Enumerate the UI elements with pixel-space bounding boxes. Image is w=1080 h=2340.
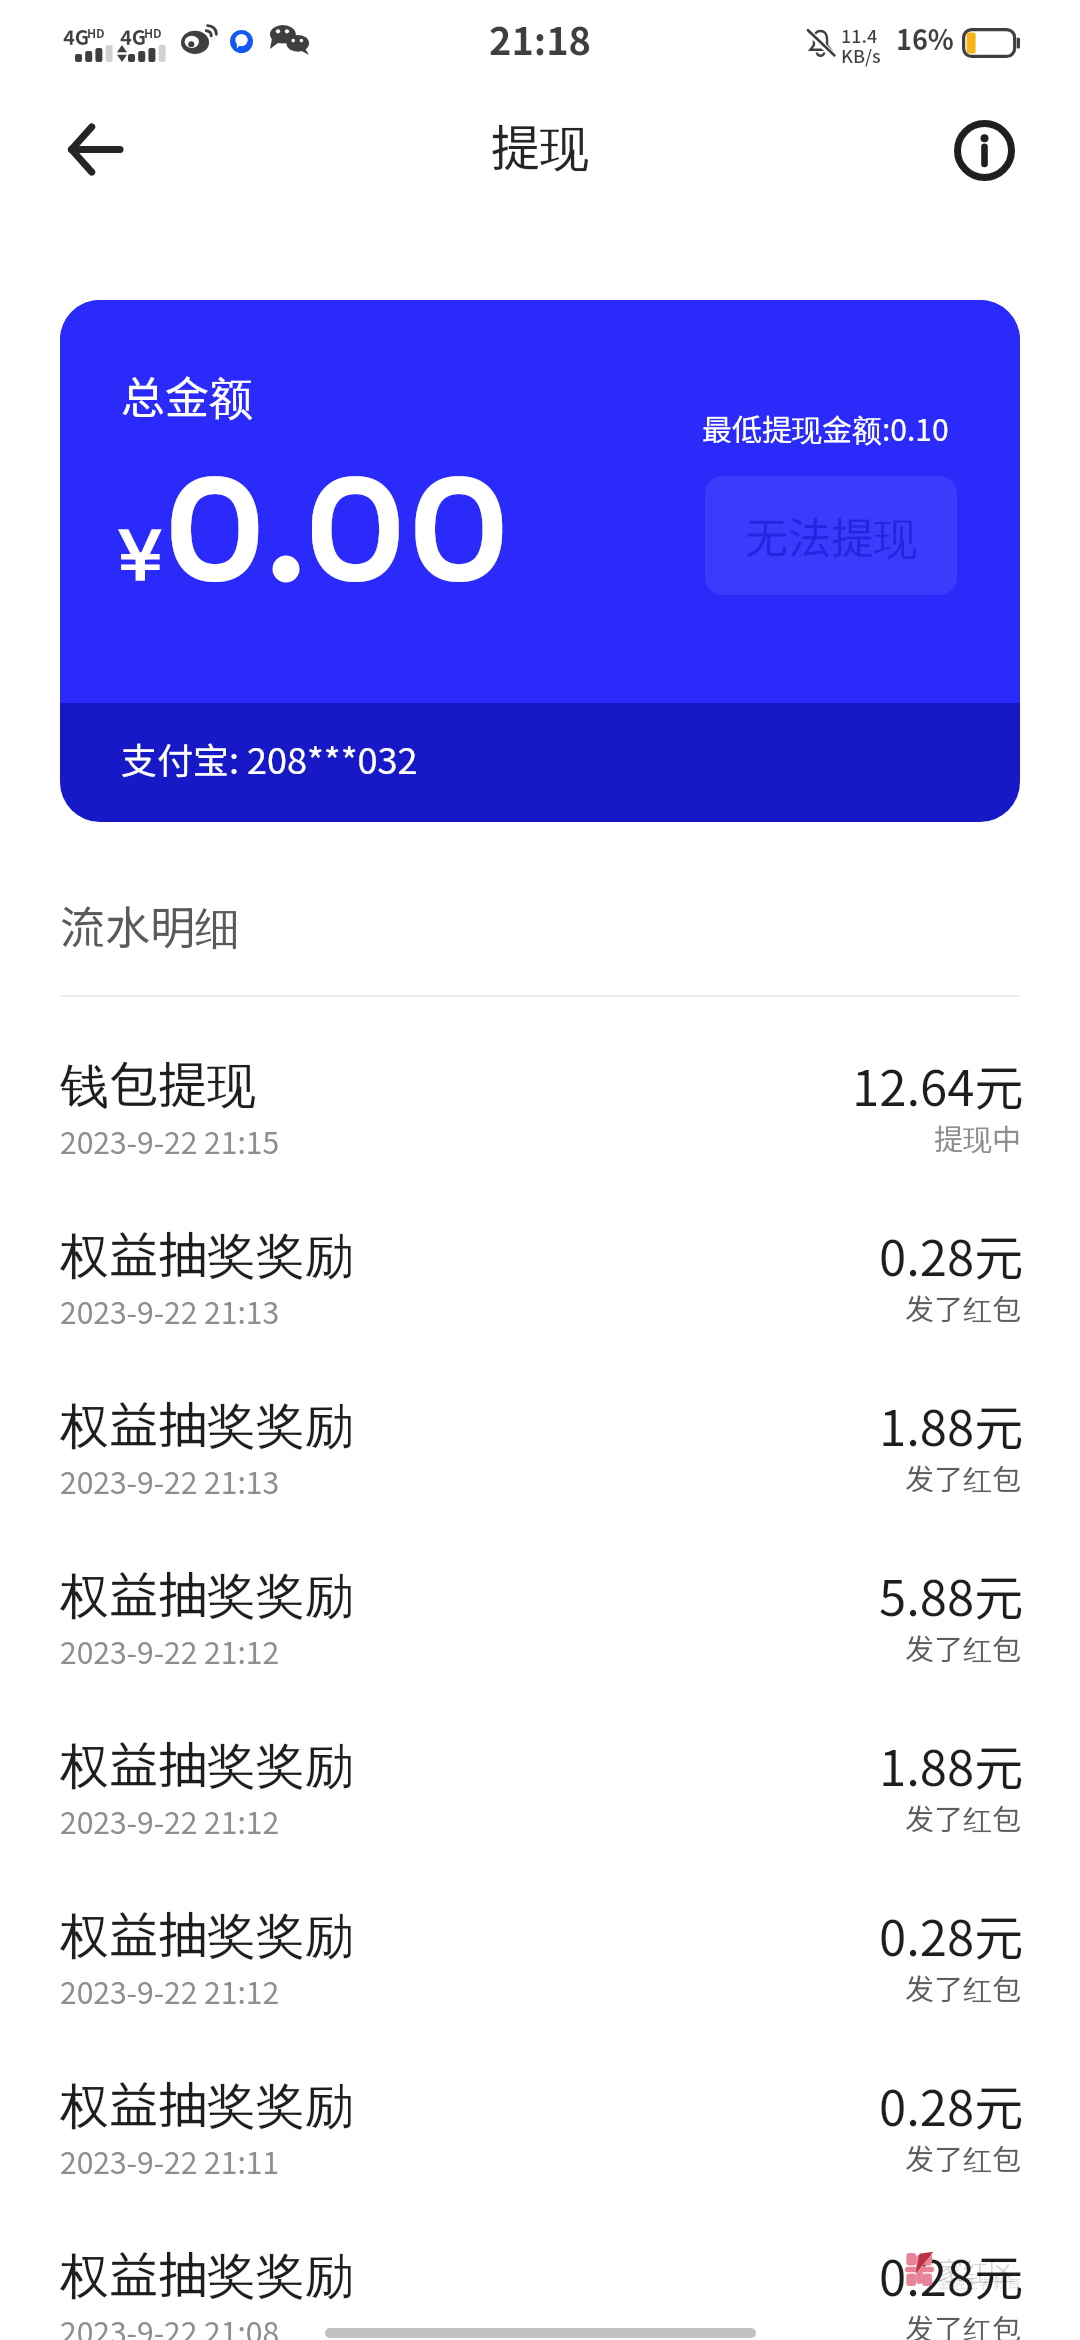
staticText: 家红区: [937, 2251, 1016, 2289]
button[interactable]: 权益抽奖奖励: [0, 2236, 1080, 2340]
staticText: 2023-9-22 21:15: [60, 1119, 280, 1162]
button[interactable]: 权益抽奖奖励: [0, 1386, 1080, 1556]
staticText: 提现中: [934, 1116, 1022, 1158]
staticText: HD: [144, 24, 162, 41]
staticText: 发了红包: [905, 1456, 1022, 1498]
staticText: 0.28元: [879, 1899, 1024, 1970]
button[interactable]: 权益抽奖奖励: [0, 1556, 1080, 1726]
button[interactable]: Info: [936, 102, 1032, 198]
staticText: 0.28元: [879, 1219, 1024, 1290]
button[interactable]: 无法提现: [705, 476, 957, 595]
staticText: 2023-9-22 21:13: [60, 1459, 280, 1502]
staticText: 提现: [491, 109, 590, 180]
staticText: 16%: [896, 19, 954, 58]
button[interactable]: 钱包提现: [0, 1046, 1080, 1216]
staticText: 0.28元: [879, 2239, 1024, 2310]
staticText: 2023-9-22 21:13: [60, 1289, 280, 1332]
staticText: 发了红包: [905, 2306, 1022, 2340]
staticText: 权益抽奖奖励: [60, 1216, 355, 1287]
staticText: 权益抽奖奖励: [60, 1896, 355, 1967]
staticText: 权益抽奖奖励: [60, 1386, 355, 1457]
staticText: 2023-9-22 21:11: [60, 2139, 280, 2182]
button[interactable]: 权益抽奖奖励: [0, 2066, 1080, 2236]
staticText: 权益抽奖奖励: [60, 1726, 355, 1797]
staticText: 总金额: [121, 363, 253, 427]
staticText: KB/s: [841, 42, 881, 68]
staticText: 钱包提现: [60, 1046, 257, 1117]
staticText: 流水明细: [60, 892, 241, 958]
staticText: 2023-9-22 21:12: [60, 1629, 280, 1672]
staticText: 发了红包: [905, 1626, 1022, 1668]
staticText: 发了红包: [905, 1796, 1022, 1838]
staticText: 最低提现金额:0.10: [702, 406, 949, 450]
staticText: 金融王者教育: [937, 2273, 1021, 2293]
staticText: 2023-9-22 21:12: [60, 1969, 280, 2012]
staticText: 0.00: [163, 446, 511, 619]
staticText: 1.88元: [879, 1729, 1024, 1800]
staticText: 4G: [63, 22, 90, 51]
staticText: 2023-9-22 21:12: [60, 1799, 280, 1842]
staticText: 21:18: [489, 11, 592, 66]
staticText: 发了红包: [905, 1286, 1022, 1328]
staticText: 11.4: [841, 22, 878, 48]
staticText: 1.88元: [879, 1389, 1024, 1460]
staticText: 2023-9-22 21:08: [60, 2309, 280, 2340]
button[interactable]: 权益抽奖奖励: [0, 1726, 1080, 1896]
staticText: 权益抽奖奖励: [60, 2066, 355, 2137]
staticText: 12.64元: [852, 1049, 1024, 1120]
staticText: 权益抽奖奖励: [60, 1556, 355, 1627]
staticText: 支付宝: 208***032: [121, 732, 418, 784]
button[interactable]: 权益抽奖奖励: [0, 1216, 1080, 1386]
staticText: 无法提现: [745, 504, 917, 567]
staticText: 4G: [120, 22, 147, 51]
staticText: 5.88元: [879, 1559, 1024, 1630]
button[interactable]: Back: [49, 103, 141, 195]
staticText: ¥: [117, 512, 163, 600]
button[interactable]: 权益抽奖奖励: [0, 1896, 1080, 2066]
staticText: 权益抽奖奖励: [60, 2236, 355, 2307]
staticText: 发了红包: [905, 1966, 1022, 2008]
staticText: HD: [87, 24, 105, 41]
staticText: 发了红包: [905, 2136, 1022, 2178]
staticText: 0.28元: [879, 2069, 1024, 2140]
